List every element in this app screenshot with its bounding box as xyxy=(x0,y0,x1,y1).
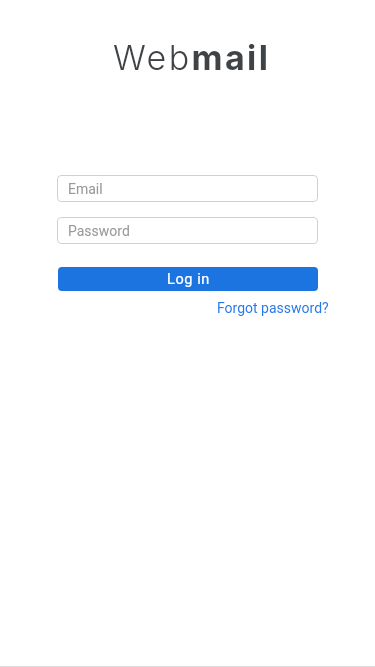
button[interactable]: Password xyxy=(57,217,318,244)
button[interactable]: Email xyxy=(57,175,318,202)
button[interactable]: Forgot password? xyxy=(217,300,329,316)
staticText: Forgot password? xyxy=(217,300,329,316)
staticText: Log in xyxy=(167,271,210,288)
staticText: Webmail xyxy=(113,37,271,78)
staticText: Password xyxy=(68,223,130,239)
button[interactable]: Log in xyxy=(58,267,318,291)
staticText: Email xyxy=(68,181,103,197)
